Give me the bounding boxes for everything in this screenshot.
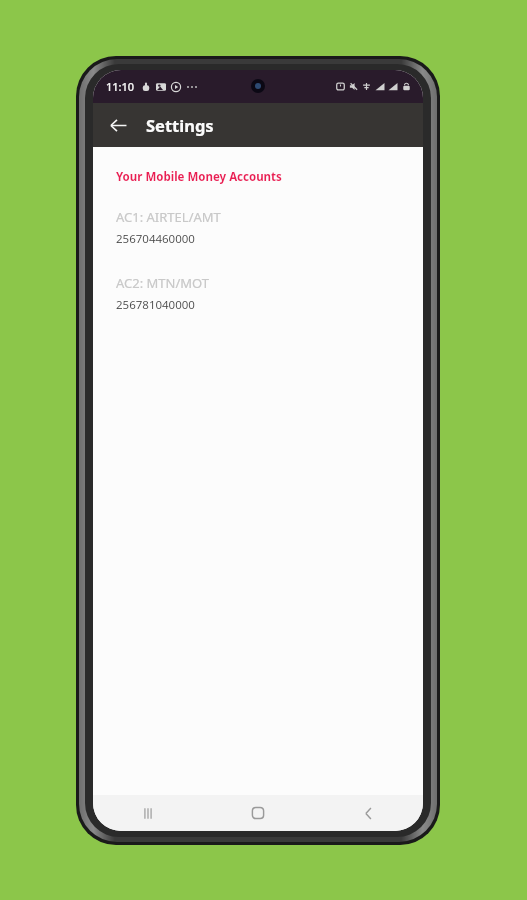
staticText: AC2: MTN/MOT [116,274,210,292]
button[interactable]: Back [313,795,423,831]
staticText: 256704460000 [116,231,195,247]
staticText: Settings [146,114,214,136]
button[interactable]: Recent apps [93,795,203,831]
button[interactable]: AC1: AIRTEL/AMT [116,208,403,247]
button[interactable]: Home [203,795,313,831]
staticText: 256781040000 [116,297,195,313]
staticText: 11:10 [106,79,135,94]
staticText: Your Mobile Money Accounts [116,169,282,185]
button[interactable]: AC2: MTN/MOT [116,274,403,313]
button[interactable]: Back [99,106,137,144]
staticText: AC1: AIRTEL/AMT [116,208,221,226]
